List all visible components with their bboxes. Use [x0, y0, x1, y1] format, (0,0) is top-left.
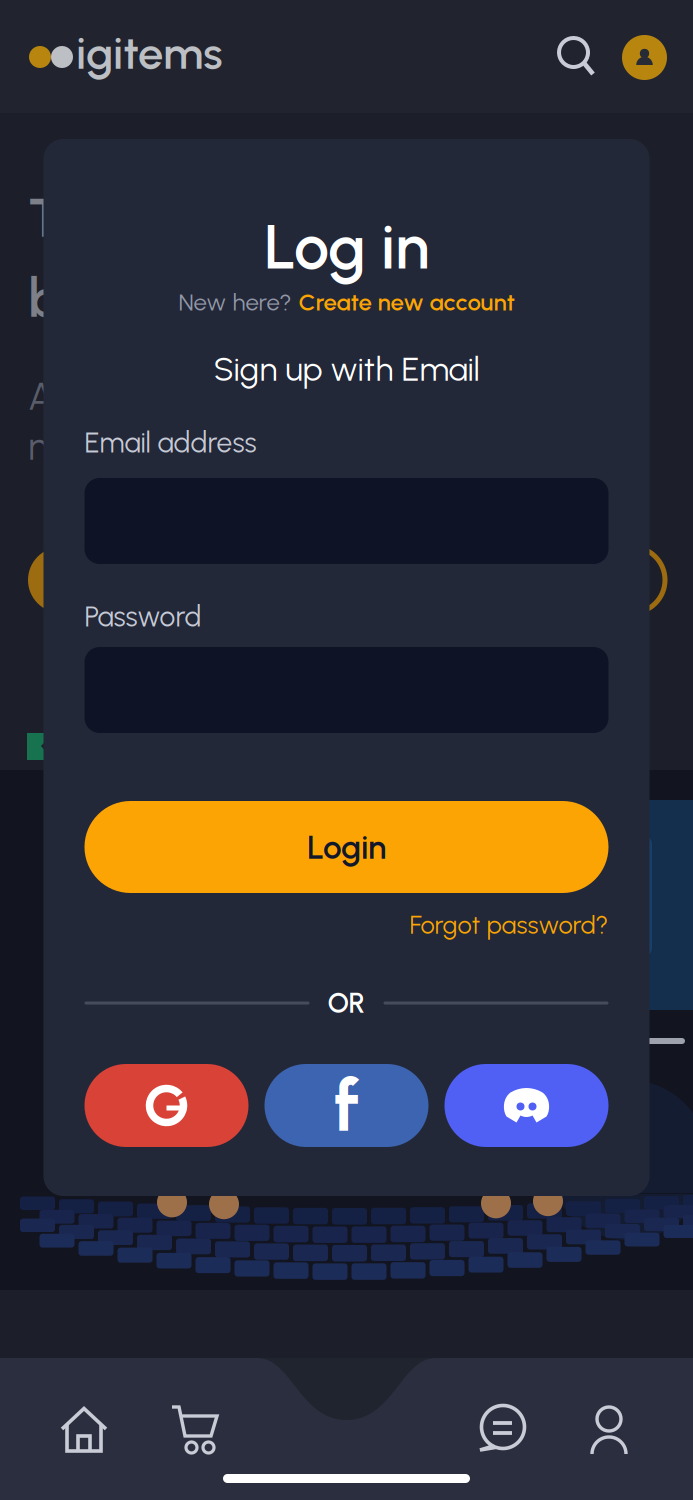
- staticText: none of the hassle.: [28, 423, 339, 469]
- button[interactable]: Continue with Discord: [444, 1064, 608, 1147]
- button[interactable]: Login: [84, 801, 608, 893]
- staticText: Password: [84, 600, 201, 634]
- button[interactable]: Profile: [557, 1387, 661, 1473]
- staticText: f: [333, 1062, 359, 1149]
- staticText: Anything you want, any: [28, 373, 421, 419]
- staticText: Sign up with Email: [213, 349, 479, 389]
- staticText: igitems: [76, 26, 223, 80]
- staticText: buy & sell games: [28, 266, 434, 330]
- staticText: Log in: [264, 209, 429, 284]
- button[interactable]: Continue with Facebook: [264, 1064, 428, 1147]
- staticText: OR: [327, 986, 365, 1020]
- staticText: Forgot password?: [409, 910, 608, 940]
- staticText: Email address: [84, 426, 256, 460]
- button[interactable]: Continue with Google: [84, 1064, 248, 1147]
- button[interactable]: igitems: [29, 33, 223, 81]
- staticText: Create new account: [298, 288, 514, 316]
- button[interactable]: Home: [32, 1387, 136, 1473]
- button[interactable]: Account: [622, 35, 667, 80]
- button[interactable]: Search: [558, 36, 602, 80]
- button[interactable]: Forgot password?: [84, 909, 608, 941]
- staticText: The best place to: [28, 186, 443, 250]
- button[interactable]: Cart: [136, 1387, 256, 1473]
- button[interactable]: New here?: [43, 285, 649, 319]
- staticText: Login: [307, 827, 386, 867]
- staticText: New here?: [178, 288, 291, 316]
- button[interactable]: Messages: [445, 1387, 557, 1473]
